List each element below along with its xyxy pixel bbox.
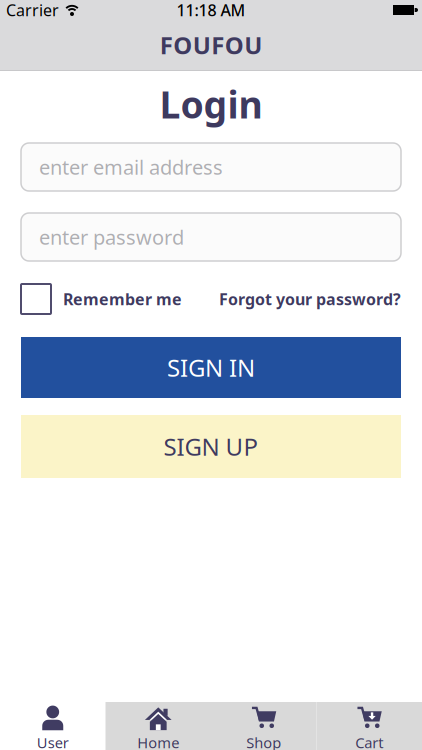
staticText: SIGN UP <box>163 431 258 462</box>
button[interactable]: Home <box>105 702 211 750</box>
staticText: User <box>37 733 69 750</box>
button[interactable]: SIGN IN <box>21 337 401 398</box>
button[interactable]: Shop <box>211 702 316 750</box>
staticText: Remember me <box>63 288 182 310</box>
button[interactable]: SIGN UP <box>21 415 401 478</box>
staticText: Carrier <box>6 0 59 21</box>
staticText: FOUFOU <box>160 29 262 61</box>
button[interactable]: User <box>0 702 105 750</box>
staticText: Cart <box>355 733 383 750</box>
button[interactable]: Remember me <box>21 284 182 314</box>
staticText: 11:18 AM <box>176 0 245 21</box>
staticText: Shop <box>246 733 281 750</box>
staticText: Forgot your password? <box>219 288 401 310</box>
staticText: Home <box>137 733 179 750</box>
button[interactable]: enter password <box>21 213 401 261</box>
staticText: SIGN IN <box>167 352 255 383</box>
staticText: Login <box>159 79 262 129</box>
button[interactable]: Forgot your password? <box>219 288 401 310</box>
button[interactable]: enter email address <box>21 143 401 191</box>
staticText: enter password <box>39 224 184 250</box>
button[interactable]: Cart <box>316 702 422 750</box>
staticText: enter email address <box>39 154 223 180</box>
